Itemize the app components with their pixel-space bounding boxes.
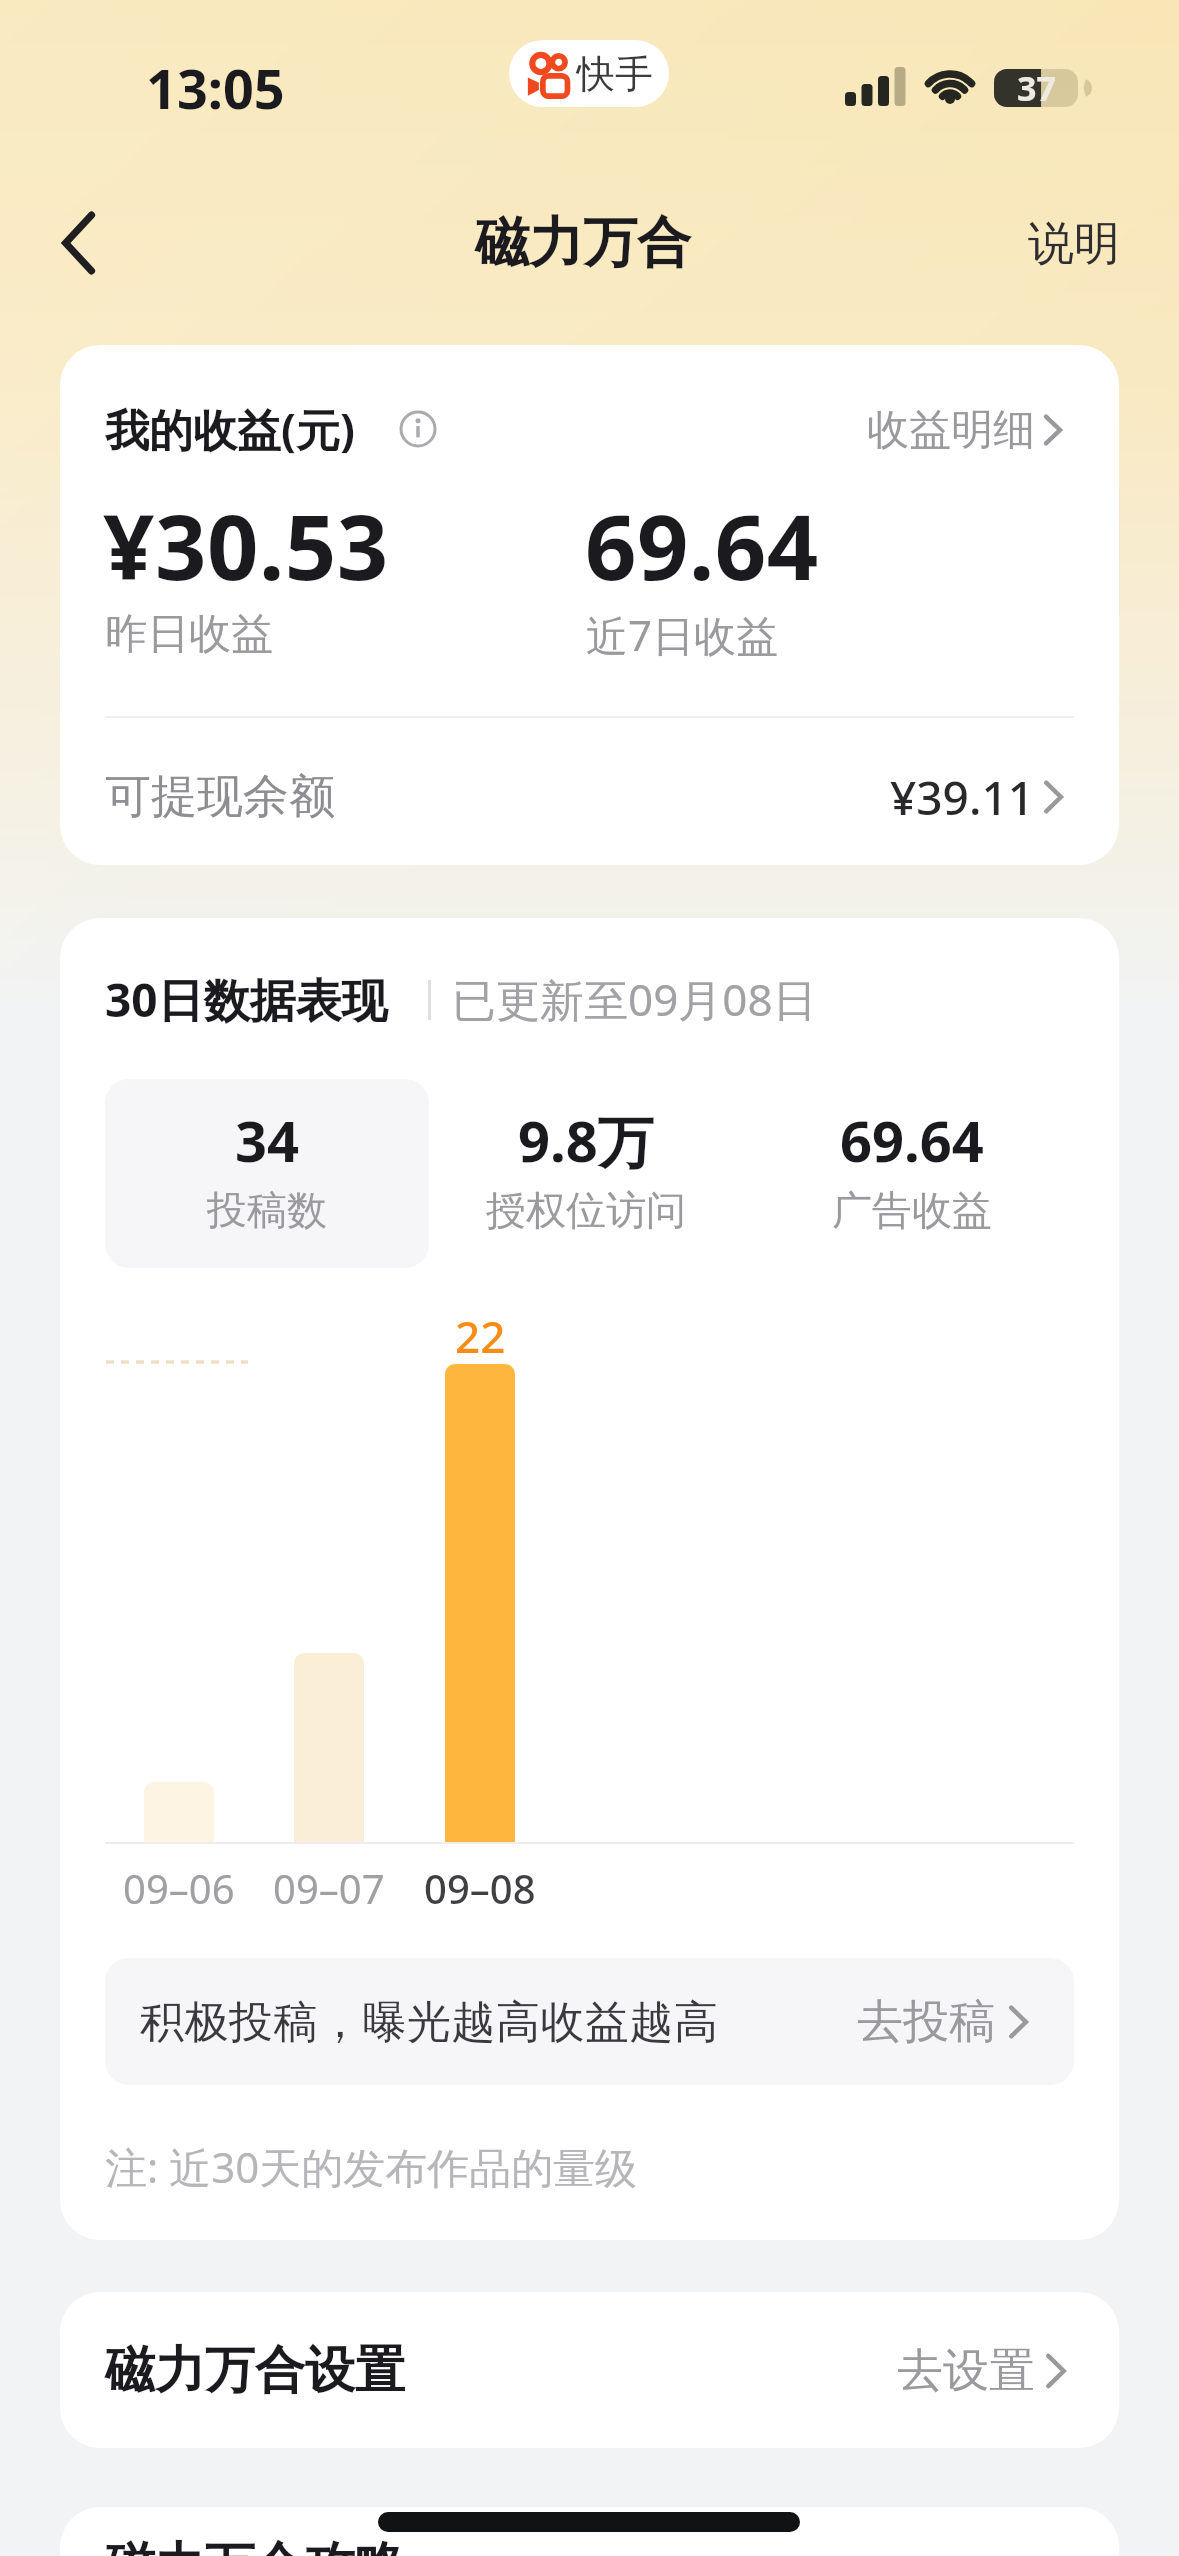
staticText: 积极投稿，曝光越高收益越高 [140,1995,719,2050]
staticText: 昨日收益 [105,608,273,661]
button[interactable] [60,2507,1119,2556]
staticText: 授权位访问 [486,1185,686,1235]
staticText: 去设置 [897,2342,1035,2400]
staticText: 去投稿 [857,1993,995,2051]
staticText: 注: 近30天的发布作品的量级 [105,2138,638,2195]
button[interactable] [105,1958,1074,2085]
button[interactable]: ¥39.11 [780,727,1035,867]
staticText: ¥39.11 [890,766,1035,829]
staticText: 30日数据表现 [105,968,388,1031]
button[interactable] [399,410,437,448]
staticText: 说明 [1028,215,1120,273]
button[interactable] [509,40,669,107]
staticText: 磁力万合 [475,209,691,277]
staticText: 34 [235,1102,300,1178]
staticText: 投稿数 [207,1185,327,1235]
staticText: 69.64 [585,484,819,607]
staticText: 22 [455,1306,506,1366]
staticText: 69.64 [840,1102,984,1178]
staticText: 09–08 [424,1861,536,1915]
staticText: 13:05 [146,51,285,125]
staticText: 我的收益(元) [105,399,355,459]
staticText: 可提现余额 [105,768,335,826]
button[interactable]: 收益明细 [780,360,1035,500]
staticText: 近7日收益 [586,606,779,663]
staticText: 快手 [577,50,653,98]
staticText: 磁力万合攻略 [105,2535,405,2556]
staticText: 37 [1017,65,1056,111]
staticText: 收益明细 [867,404,1035,457]
button[interactable]: 说明 [1000,174,1120,314]
staticText: 广告收益 [832,1185,992,1235]
staticText: 09–07 [273,1861,385,1915]
staticText: 09–06 [123,1861,235,1915]
staticText: ¥30.53 [103,484,389,607]
button[interactable] [60,2292,1119,2448]
button[interactable] [58,212,100,274]
staticText: 9.8万 [518,1102,654,1178]
staticText: 磁力万合设置 [105,2339,405,2402]
button[interactable] [105,1079,429,1268]
staticText: 已更新至09月08日 [452,969,817,1029]
